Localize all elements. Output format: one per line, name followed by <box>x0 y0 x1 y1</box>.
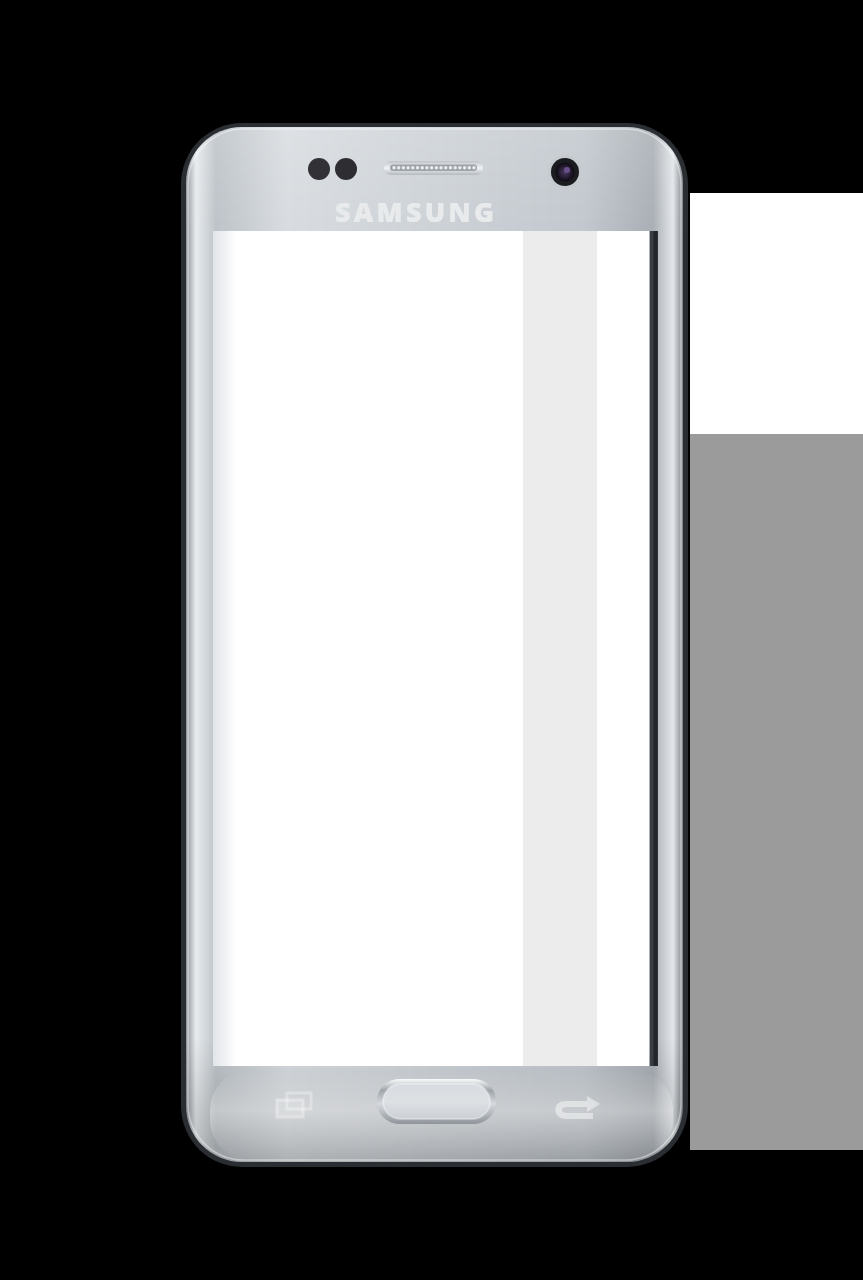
button[interactable]: Samsung Galaxy phone mockup <box>0 0 863 1280</box>
staticText: SAMSUNG <box>335 193 498 230</box>
